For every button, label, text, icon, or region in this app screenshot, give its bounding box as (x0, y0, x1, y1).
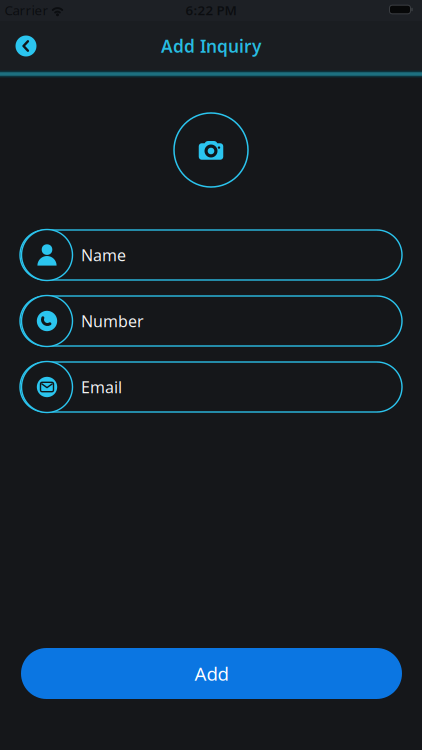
staticText: Name (81, 244, 126, 266)
button[interactable]: Add (21, 648, 402, 699)
button[interactable]: Name (9, 227, 413, 283)
staticText: 6:22 PM (185, 1, 236, 19)
button[interactable] (174, 113, 248, 187)
staticText: Email (81, 376, 122, 398)
staticText: Carrier (4, 1, 48, 19)
button[interactable]: Number (9, 293, 413, 349)
staticText: Add Inquiry (161, 34, 261, 57)
button[interactable]: Email (9, 359, 413, 415)
staticText: Number (81, 310, 144, 332)
button[interactable] (15, 35, 36, 56)
staticText: Add (194, 661, 228, 686)
